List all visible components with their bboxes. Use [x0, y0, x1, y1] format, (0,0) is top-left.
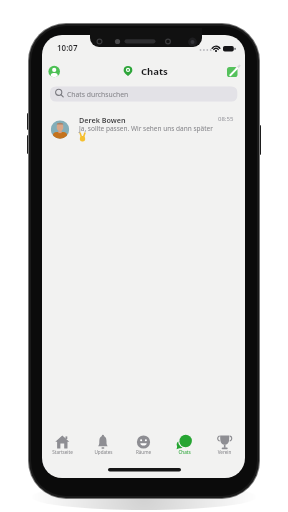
staticText: Verein [204, 449, 245, 455]
staticText: Derek Bowen [79, 115, 126, 125]
staticText: Ja, sollte passen. Wir sehen uns dann sp… [79, 124, 213, 133]
staticText: Räume [123, 449, 164, 455]
button[interactable] [123, 431, 164, 457]
staticText: Chats [141, 65, 168, 78]
staticText: Startseite [42, 449, 83, 455]
button[interactable] [204, 431, 245, 457]
staticText: Chats durchsuchen [67, 90, 129, 99]
button[interactable] [50, 87, 237, 102]
button[interactable] [46, 63, 63, 80]
button[interactable] [222, 62, 240, 79]
button[interactable] [42, 113, 245, 145]
button[interactable] [42, 431, 83, 457]
staticText: 08:55 [218, 115, 234, 123]
staticText: Updates [83, 449, 124, 455]
button[interactable] [83, 431, 124, 457]
staticText: Chats [164, 449, 205, 455]
button[interactable] [164, 431, 205, 457]
staticText: 10:07 [57, 42, 78, 53]
